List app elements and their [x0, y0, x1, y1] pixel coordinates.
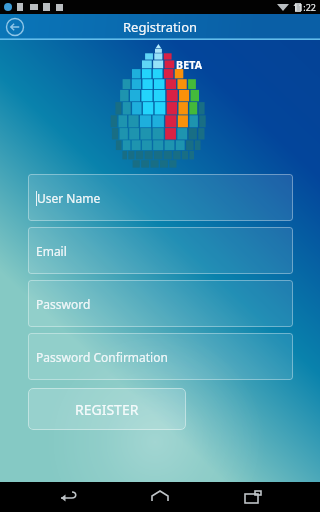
staticText: Password Confirmation	[36, 349, 168, 365]
button[interactable]: Password	[28, 280, 293, 327]
button[interactable]: REGISTER	[28, 388, 186, 430]
staticText: User Name	[37, 190, 101, 206]
button[interactable]: User Name	[28, 174, 293, 221]
staticText: Password	[36, 296, 91, 312]
button[interactable]: Email	[28, 227, 293, 274]
button[interactable]: Back	[4, 16, 26, 38]
button[interactable]: Home	[135, 482, 185, 512]
staticText: BETA	[176, 58, 203, 72]
staticText: 11:22	[293, 1, 317, 13]
staticText: REGISTER	[75, 400, 139, 419]
staticText: Email	[36, 243, 67, 259]
button[interactable]: Recent apps	[228, 482, 278, 512]
staticText: Registration	[123, 18, 198, 36]
button[interactable]: Back	[43, 482, 93, 512]
button[interactable]: Password Confirmation	[28, 333, 293, 380]
